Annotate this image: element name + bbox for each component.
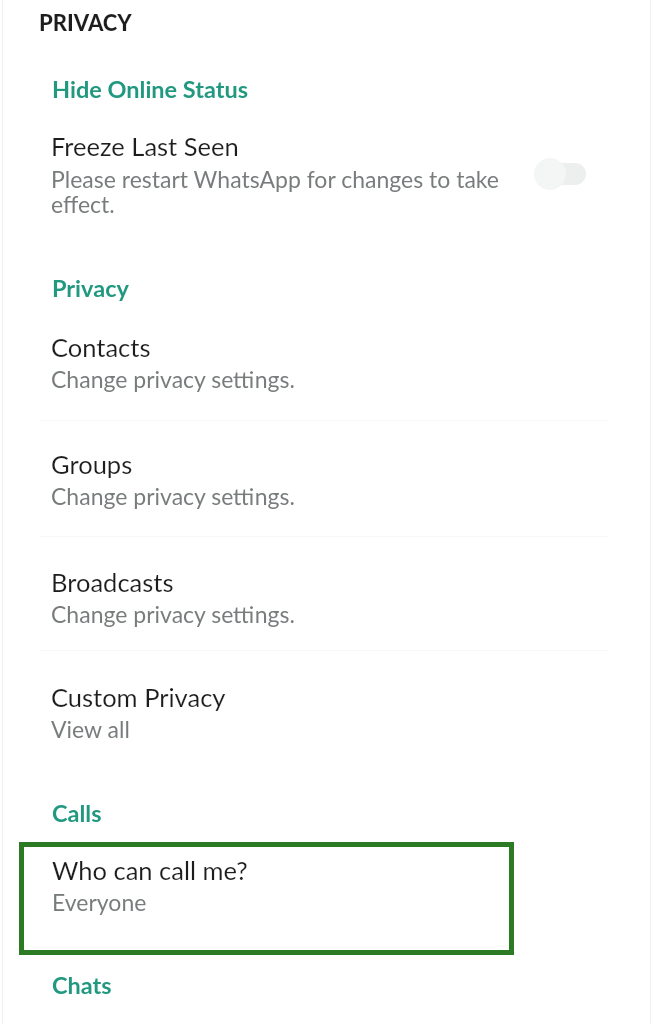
button[interactable]: Freeze Last Seen toggle, off [528, 152, 592, 196]
staticText: Calls [52, 799, 102, 827]
staticText: Broadcasts [51, 567, 174, 598]
staticText: Custom Privacy [51, 682, 226, 713]
staticText: PRIVACY [39, 9, 132, 35]
staticText: Change privacy settings. [51, 600, 295, 628]
button[interactable]: Groups [0, 442, 654, 530]
button[interactable]: Custom Privacy [0, 675, 654, 759]
staticText: Contacts [51, 332, 151, 363]
staticText: Groups [51, 449, 133, 480]
button[interactable]: Broadcasts [0, 560, 654, 646]
button[interactable]: Freeze Last Seen [0, 124, 654, 231]
staticText: Who can call me? [52, 855, 248, 886]
staticText: Everyone [52, 888, 147, 916]
staticText: Hide Online Status [52, 75, 249, 103]
button[interactable]: Who can call me? [19, 842, 514, 955]
staticText: Change privacy settings. [51, 365, 295, 393]
staticText: Freeze Last Seen [51, 131, 239, 162]
staticText: Chats [52, 971, 112, 999]
button[interactable]: Contacts [0, 325, 654, 413]
staticText: View all [51, 715, 130, 743]
staticText: Change privacy settings. [51, 482, 295, 510]
staticText: Please restart WhatsApp for changes to t… [51, 165, 511, 218]
staticText: Privacy [52, 274, 129, 302]
